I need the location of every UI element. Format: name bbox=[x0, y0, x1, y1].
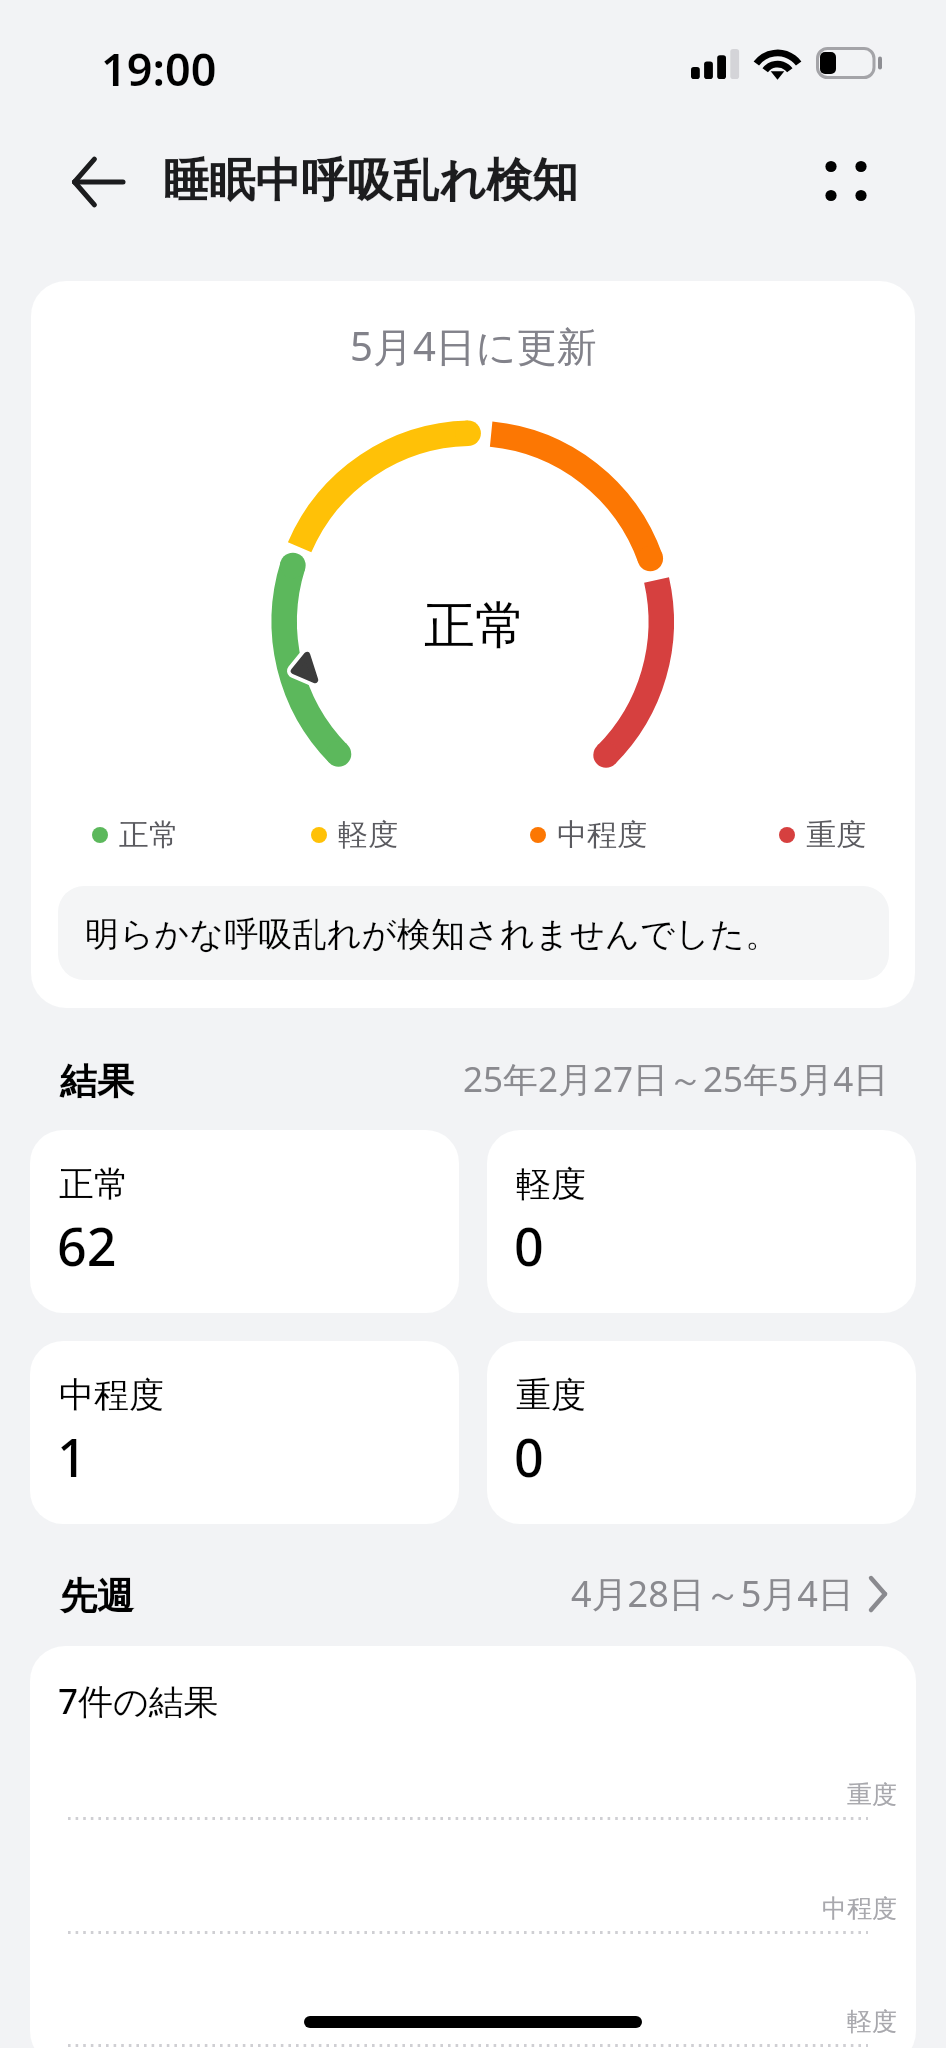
staticText: 0 bbox=[514, 1421, 544, 1492]
staticText: 1 bbox=[57, 1421, 87, 1492]
staticText: 睡眠中呼吸乱れ検知 bbox=[163, 152, 579, 210]
staticText: 先週 bbox=[60, 1573, 134, 1620]
button[interactable]: 正常 bbox=[30, 1130, 459, 1313]
staticText: 正常 bbox=[424, 594, 526, 658]
staticText: 19:00 bbox=[101, 38, 217, 99]
button[interactable]: 中程度 bbox=[30, 1341, 459, 1524]
staticText: 重度 bbox=[847, 1779, 897, 1810]
staticText: 中程度 bbox=[59, 1373, 164, 1417]
staticText: 中程度 bbox=[822, 1893, 897, 1924]
staticText: 明らかな呼吸乱れが検知されませんでした。 bbox=[85, 913, 780, 956]
staticText: 正常 bbox=[119, 816, 179, 854]
staticText: 7件の結果 bbox=[58, 1677, 219, 1725]
staticText: 62 bbox=[57, 1210, 117, 1281]
staticText: 中程度 bbox=[557, 816, 647, 854]
staticText: 25年2月27日～25年5月4日 bbox=[463, 1055, 889, 1103]
staticText: 4月28日～5月4日 bbox=[571, 1569, 854, 1618]
staticText: 軽度 bbox=[847, 2006, 897, 2037]
button[interactable]: Back bbox=[52, 136, 143, 227]
button[interactable]: 4月28日～5月4日 bbox=[571, 1569, 888, 1618]
staticText: 軽度 bbox=[516, 1162, 586, 1206]
staticText: 正常 bbox=[59, 1162, 129, 1206]
button[interactable]: 軽度 bbox=[487, 1130, 916, 1313]
staticText: 重度 bbox=[806, 816, 866, 854]
staticText: 結果 bbox=[60, 1058, 134, 1105]
staticText: 0 bbox=[514, 1210, 544, 1281]
button[interactable]: More options bbox=[798, 133, 894, 229]
staticText: 軽度 bbox=[338, 816, 398, 854]
staticText: 5月4日に更新 bbox=[350, 318, 597, 373]
button[interactable]: 重度 bbox=[487, 1341, 916, 1524]
button[interactable]: 明らかな呼吸乱れが検知されませんでした。 bbox=[58, 886, 889, 980]
staticText: 重度 bbox=[516, 1373, 586, 1417]
